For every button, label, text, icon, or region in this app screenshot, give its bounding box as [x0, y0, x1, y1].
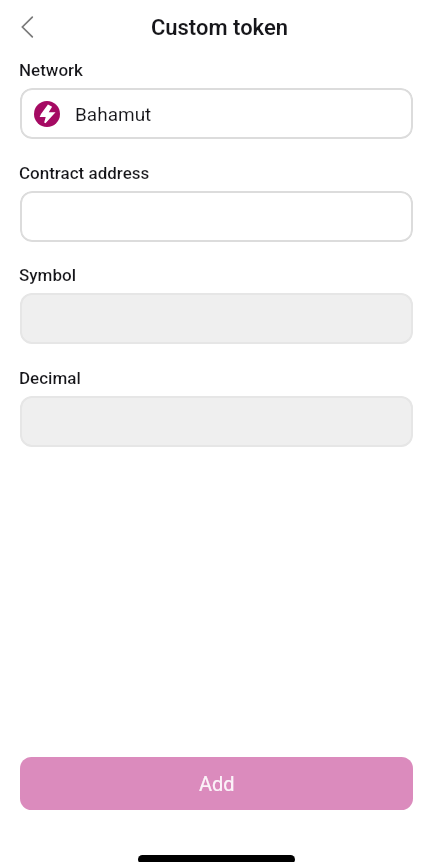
staticText: Network — [19, 60, 83, 80]
staticText: Contract address — [19, 163, 150, 183]
staticText: Custom token — [3, 15, 433, 41]
staticText: Decimal — [19, 368, 81, 388]
button[interactable]: Contract address — [20, 191, 413, 242]
staticText: Symbol — [19, 265, 76, 285]
button[interactable]: Back — [7, 7, 47, 47]
staticText: Add — [199, 772, 235, 795]
staticText: Bahamut — [75, 103, 152, 125]
button[interactable]: Bahamut — [20, 88, 413, 139]
button[interactable]: Add — [20, 757, 413, 810]
